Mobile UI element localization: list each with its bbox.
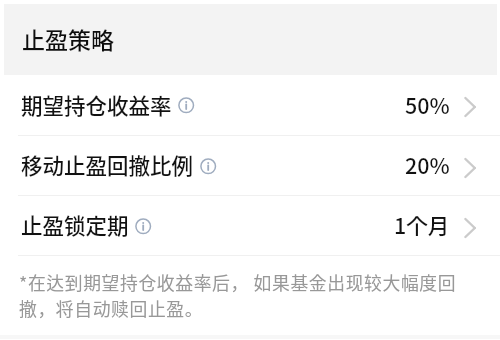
button[interactable]: 期望持仓收益率 <box>0 75 500 136</box>
button[interactable]: 期望持仓收益率 说明 <box>178 93 195 115</box>
staticText: 期望持仓收益率 <box>21 89 172 120</box>
staticText: 止盈锁定期 <box>21 209 129 240</box>
staticText: 20% <box>405 149 450 180</box>
button[interactable]: 止盈锁定期 说明 <box>135 214 152 236</box>
staticText: 移动止盈回撤比例 <box>21 149 194 180</box>
button[interactable]: 移动止盈回撤比例 说明 <box>200 154 217 176</box>
staticText: 止盈策略 <box>22 22 114 55</box>
staticText: 1个月 <box>394 209 450 240</box>
button[interactable]: 止盈锁定期 <box>0 196 500 256</box>
button[interactable]: 移动止盈回撤比例 <box>0 136 500 196</box>
staticText: 50% <box>405 89 450 120</box>
staticText: *在达到期望持仓收益率后， 如果基金出现较大幅度回撤，将自动赎回止盈。 <box>19 269 472 321</box>
